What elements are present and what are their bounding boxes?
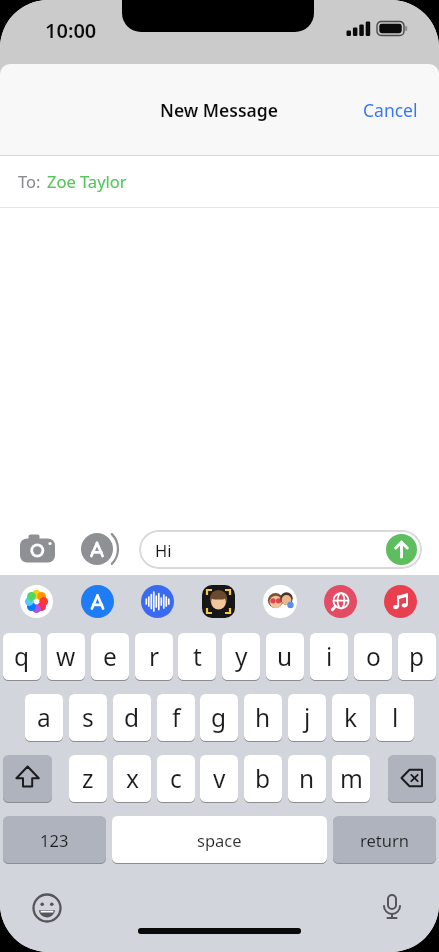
button[interactable]	[141, 585, 174, 618]
button[interactable]	[14, 530, 60, 568]
staticText: r	[149, 640, 160, 673]
staticText: z	[82, 762, 94, 795]
button[interactable]: u	[266, 633, 304, 680]
button[interactable]	[81, 585, 114, 618]
button[interactable]: z	[69, 755, 107, 802]
button[interactable]	[388, 755, 436, 802]
button[interactable]	[386, 534, 417, 565]
staticText: e	[103, 640, 117, 673]
staticText: y	[235, 640, 248, 673]
staticText: i	[326, 640, 333, 673]
staticText: d	[124, 701, 140, 734]
button[interactable]: j	[288, 694, 326, 741]
staticText: s	[82, 701, 94, 734]
button[interactable]: k	[332, 694, 370, 741]
staticText: New Message	[160, 98, 279, 122]
staticText: f	[172, 701, 181, 734]
button[interactable]: n	[288, 755, 326, 802]
button[interactable]	[376, 890, 408, 922]
button[interactable]	[384, 585, 417, 618]
staticText: x	[126, 762, 139, 795]
button[interactable]: v	[200, 755, 238, 802]
button[interactable]	[202, 585, 235, 618]
staticText: 10:00	[45, 17, 97, 44]
button[interactable]: t	[178, 633, 216, 680]
staticText: l	[392, 701, 399, 734]
staticText: Hi	[155, 539, 172, 561]
staticText: j	[304, 701, 311, 734]
staticText: k	[344, 701, 358, 734]
staticText: Zoe Taylor	[47, 170, 127, 192]
button[interactable]	[31, 892, 63, 924]
staticText: space	[197, 829, 242, 851]
button[interactable]: o	[354, 633, 392, 680]
button[interactable]	[3, 755, 52, 802]
button[interactable]: f	[157, 694, 195, 741]
staticText: w	[56, 640, 76, 673]
staticText: m	[340, 762, 363, 795]
staticText: To:	[18, 170, 45, 192]
button[interactable]: c	[157, 755, 195, 802]
staticText: c	[170, 762, 182, 795]
button[interactable]: 123	[3, 816, 106, 863]
button[interactable]: e	[91, 633, 129, 680]
staticText: o	[366, 640, 381, 673]
staticText: 123	[40, 829, 69, 851]
button[interactable]: space	[112, 816, 327, 863]
button[interactable]: y	[222, 633, 260, 680]
button[interactable]: l	[376, 694, 414, 741]
button[interactable]: m	[332, 755, 370, 802]
staticText: p	[409, 640, 425, 673]
button[interactable]: To:	[0, 156, 439, 206]
button[interactable]	[20, 585, 53, 618]
button[interactable]: r	[135, 633, 173, 680]
staticText: a	[37, 701, 51, 734]
staticText: Cancel	[363, 98, 418, 122]
button[interactable]: g	[200, 694, 238, 741]
button[interactable]: a	[25, 694, 63, 741]
button[interactable]	[263, 585, 297, 618]
button[interactable]	[324, 585, 357, 618]
button[interactable]	[78, 530, 130, 568]
staticText: return	[360, 829, 409, 851]
button[interactable]: q	[3, 633, 41, 680]
staticText: t	[193, 640, 202, 673]
button[interactable]: p	[398, 633, 436, 680]
button[interactable]: return	[333, 816, 436, 863]
button[interactable]: w	[47, 633, 85, 680]
button[interactable]: s	[69, 694, 107, 741]
button[interactable]: x	[113, 755, 151, 802]
button[interactable]: Cancel	[355, 90, 425, 130]
button[interactable]: i	[310, 633, 348, 680]
button[interactable]: d	[113, 694, 151, 741]
button[interactable]: h	[244, 694, 282, 741]
staticText: v	[213, 762, 226, 795]
staticText: b	[255, 762, 271, 795]
staticText: n	[299, 762, 315, 795]
button[interactable]: b	[244, 755, 282, 802]
staticText: q	[14, 640, 30, 673]
staticText: u	[277, 640, 293, 673]
staticText: g	[211, 701, 227, 734]
button[interactable]: Hi	[139, 530, 422, 569]
staticText: h	[255, 701, 271, 734]
